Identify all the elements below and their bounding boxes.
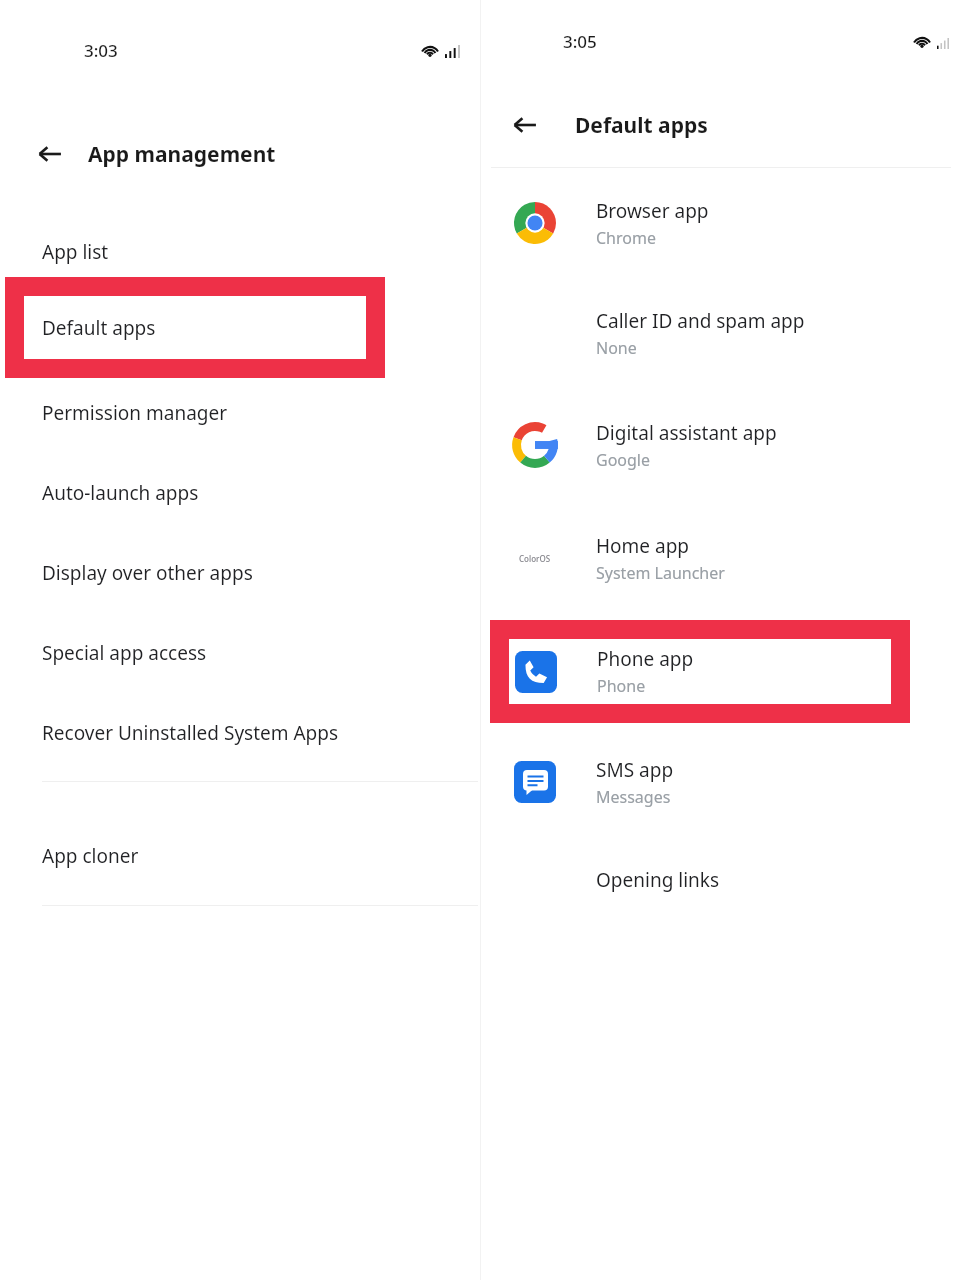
button[interactable]: Back: [505, 105, 545, 145]
button[interactable]: Digital assistant app: [481, 414, 971, 476]
button[interactable]: Opening links: [481, 858, 971, 902]
staticText: Phone app: [597, 646, 694, 672]
staticText: Chrome: [596, 227, 656, 249]
staticText: Permission manager: [42, 400, 228, 426]
staticText: Default apps: [575, 111, 708, 140]
button[interactable]: Display over other apps: [0, 550, 480, 596]
staticText: Google: [596, 449, 651, 471]
button[interactable]: SMS app: [481, 751, 971, 813]
staticText: Messages: [596, 786, 671, 808]
staticText: App list: [42, 239, 109, 265]
button[interactable]: Browser app: [481, 192, 971, 254]
staticText: Auto-launch apps: [42, 480, 199, 506]
staticText: Default apps: [42, 320, 156, 346]
button[interactable]: Caller ID and spam app: [481, 302, 971, 364]
button[interactable]: App cloner: [0, 833, 480, 879]
staticText: Phone app: [596, 646, 693, 672]
button[interactable]: ColorOS: [481, 527, 971, 589]
staticText: Phone: [596, 675, 645, 697]
button[interactable]: Auto-launch apps: [0, 470, 480, 516]
staticText: Special app access: [42, 640, 207, 666]
button[interactable]: Special app access: [0, 630, 480, 676]
staticText: 3:03: [84, 39, 118, 62]
staticText: Home app: [596, 533, 690, 559]
staticText: System Launcher: [596, 562, 725, 584]
button[interactable]: Default apps: [5, 277, 385, 378]
button[interactable]: Phone app: [481, 640, 971, 702]
staticText: SMS app: [596, 757, 674, 783]
staticText: Caller ID and spam app: [596, 308, 805, 334]
staticText: ColorOS: [519, 553, 551, 564]
staticText: App cloner: [42, 843, 139, 869]
staticText: None: [596, 337, 637, 359]
staticText: Default apps: [42, 315, 156, 341]
button[interactable]: Permission manager: [0, 390, 480, 436]
staticText: Browser app: [596, 198, 709, 224]
button[interactable]: App list: [0, 229, 480, 275]
staticText: Phone: [597, 675, 646, 697]
button[interactable]: Back: [30, 134, 70, 174]
staticText: 3:05: [563, 30, 597, 53]
staticText: App management: [88, 140, 276, 169]
button[interactable]: Default apps: [0, 310, 480, 356]
staticText: Recover Uninstalled System Apps: [42, 720, 339, 746]
staticText: Opening links: [596, 867, 720, 893]
staticText: Display over other apps: [42, 560, 253, 586]
button[interactable]: Recover Uninstalled System Apps: [0, 710, 480, 756]
staticText: Digital assistant app: [596, 420, 777, 446]
button[interactable]: Phone app: [490, 620, 910, 723]
